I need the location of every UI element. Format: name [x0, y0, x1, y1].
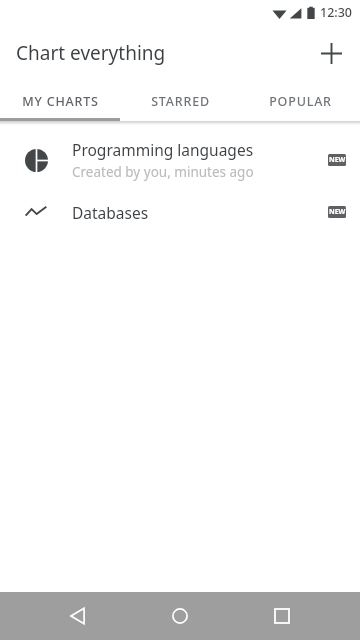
button[interactable]: Recent apps: [258, 592, 306, 640]
staticText: NEW: [329, 207, 346, 217]
staticText: Chart everything: [16, 40, 166, 66]
button[interactable]: Programming languages: [0, 131, 360, 189]
button[interactable]: Back: [54, 592, 102, 640]
staticText: NEW: [329, 155, 346, 165]
button[interactable]: MY CHARTS: [0, 81, 120, 121]
staticText: Databases: [72, 202, 149, 223]
staticText: STARRED: [151, 93, 210, 110]
staticText: 12:30: [320, 4, 353, 21]
button[interactable]: Databases: [0, 189, 360, 235]
button[interactable]: Add chart: [310, 32, 352, 74]
staticText: Created by you, minutes ago: [72, 163, 254, 181]
button[interactable]: Home: [156, 592, 204, 640]
button[interactable]: STARRED: [120, 81, 240, 121]
staticText: Programming languages: [72, 139, 254, 160]
staticText: MY CHARTS: [22, 93, 99, 110]
button[interactable]: POPULAR: [240, 81, 360, 121]
staticText: POPULAR: [269, 93, 332, 110]
